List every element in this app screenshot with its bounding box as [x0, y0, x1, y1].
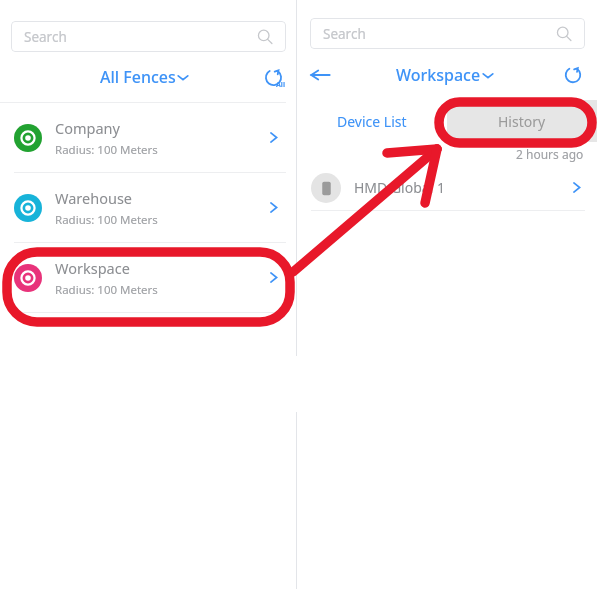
button[interactable]: Workspace	[0, 243, 296, 312]
button[interactable]: Search	[310, 18, 585, 49]
staticText: Warehouse	[55, 188, 133, 208]
button[interactable]: Warehouse	[0, 173, 296, 242]
button[interactable]: History	[447, 100, 597, 142]
button[interactable]: Refresh	[562, 64, 584, 86]
staticText: History	[498, 112, 546, 131]
button[interactable]: Device List	[297, 100, 447, 142]
staticText: Radius: 100 Meters	[55, 212, 158, 228]
staticText: Workspace	[55, 258, 130, 278]
button[interactable]: Search	[11, 21, 286, 52]
button[interactable]: Back	[309, 64, 331, 86]
staticText: Radius: 100 Meters	[55, 282, 158, 298]
staticText: All	[276, 80, 286, 90]
staticText: 2 hours ago	[516, 146, 584, 162]
button[interactable]: Company	[0, 103, 296, 172]
staticText: Device List	[337, 112, 407, 131]
staticText: Search	[24, 28, 67, 46]
staticText: Radius: 100 Meters	[55, 142, 158, 158]
button[interactable]: HMD Global 1	[297, 165, 597, 210]
staticText: Workspace	[396, 64, 481, 86]
button[interactable]: Refresh all fences	[262, 66, 285, 89]
staticText: Search	[323, 25, 366, 43]
staticText: All Fences	[100, 66, 176, 88]
staticText: Company	[55, 118, 120, 138]
staticText: HMD Global 1	[354, 178, 570, 197]
button[interactable]: All Fences	[94, 61, 195, 93]
button[interactable]: Workspace	[390, 59, 500, 91]
